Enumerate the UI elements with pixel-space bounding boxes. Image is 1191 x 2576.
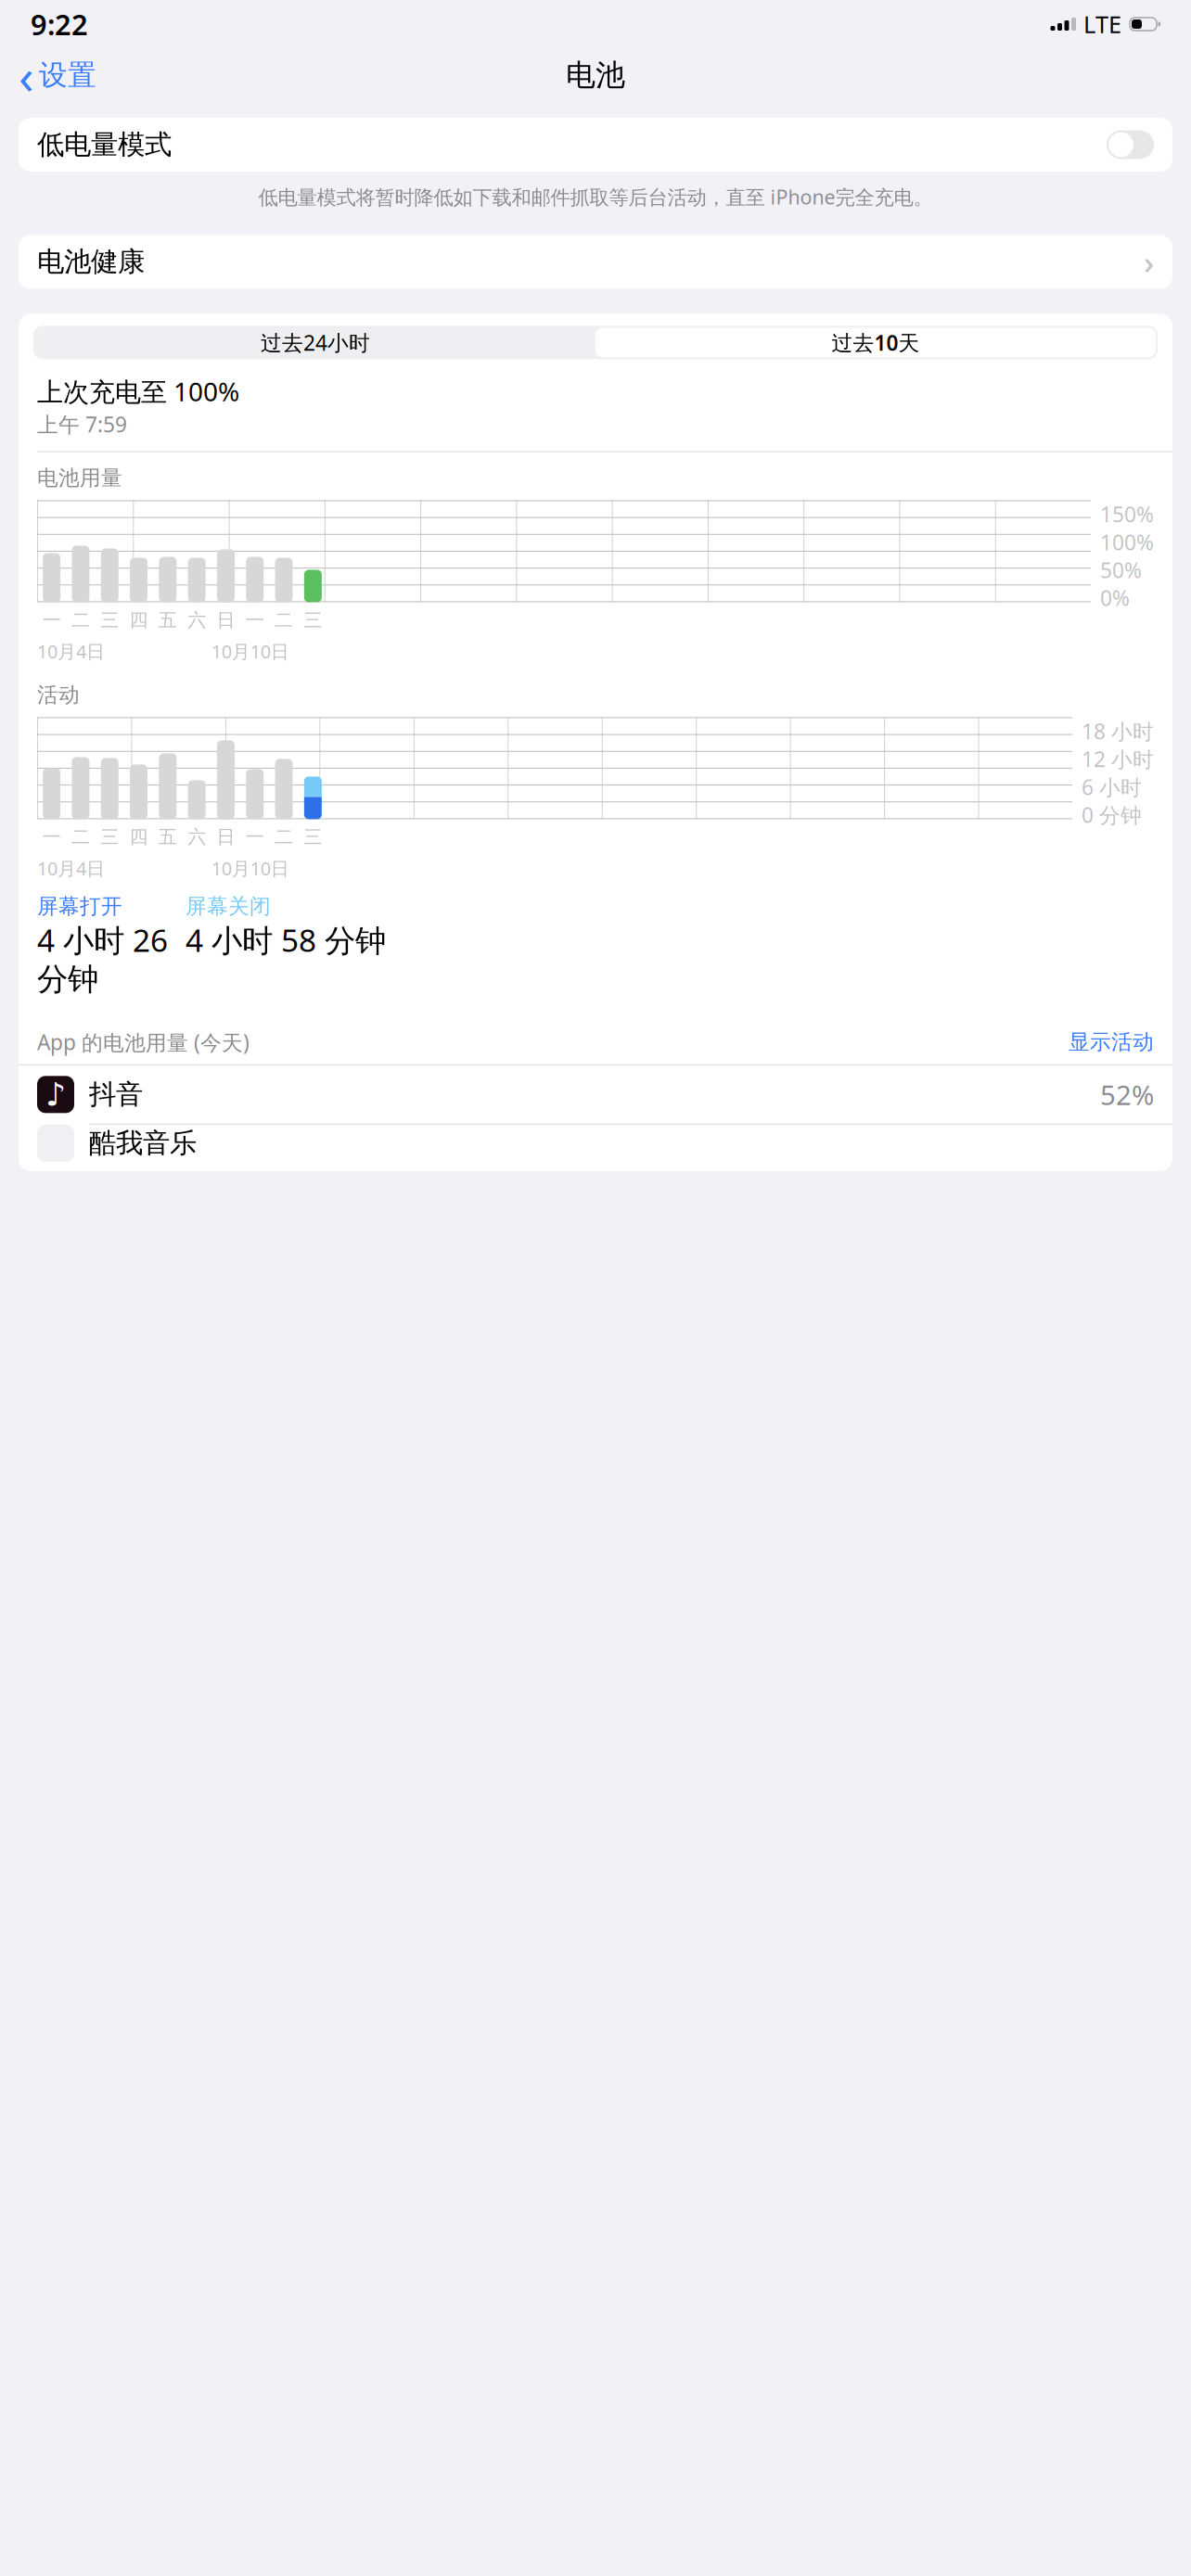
staticText: 活动 xyxy=(37,682,80,708)
staticText: 18 小时 xyxy=(1082,717,1154,745)
staticText: App 的电池用量 (今天) xyxy=(37,1028,250,1056)
staticText: 电池健康 xyxy=(37,245,145,278)
staticText: 10月4日 xyxy=(37,639,105,664)
staticText: 五 xyxy=(158,826,177,848)
staticText: 一 xyxy=(246,609,264,632)
staticText: 一 xyxy=(246,826,264,848)
staticText: 4 小时 26 分钟 xyxy=(37,919,168,998)
staticText: 100% xyxy=(1100,528,1154,556)
staticText: 过去10天 xyxy=(832,329,920,356)
staticText: 三 xyxy=(304,609,322,632)
staticText: 二 xyxy=(275,826,293,848)
staticText: 4 小时 58 分钟 xyxy=(186,919,386,960)
staticText: 52% xyxy=(1100,1076,1154,1113)
staticText: 四 xyxy=(129,609,148,632)
staticText: 抖音 xyxy=(89,1078,143,1111)
staticText: 一 xyxy=(42,826,61,848)
staticText: 二 xyxy=(71,609,90,632)
button[interactable]: ‹ xyxy=(19,37,96,113)
staticText: 上午 7:59 xyxy=(37,410,127,438)
button[interactable]: 过去10天 xyxy=(595,328,1156,357)
staticText: 三 xyxy=(304,826,322,848)
staticText: 0% xyxy=(1100,584,1130,612)
staticText: 150% xyxy=(1100,500,1154,528)
staticText: ♪ xyxy=(45,1076,66,1113)
staticText: 二 xyxy=(71,826,90,848)
staticText: LTE xyxy=(1083,9,1121,40)
staticText: ‹ xyxy=(19,42,34,108)
staticText: 显示活动 xyxy=(1069,1029,1154,1055)
staticText: 日 xyxy=(216,609,235,632)
button[interactable]: 酷我音乐 xyxy=(19,1125,1172,1171)
staticText: 五 xyxy=(158,609,177,632)
staticText: 过去24小时 xyxy=(261,329,370,356)
staticText: 电池用量 xyxy=(37,465,122,491)
staticText: 四 xyxy=(129,826,148,848)
staticText: › xyxy=(1144,240,1154,283)
staticText: 三 xyxy=(100,826,119,848)
staticText: 屏幕关闭 xyxy=(186,893,271,919)
staticText: 一 xyxy=(42,609,61,632)
button[interactable]: 电池健康 xyxy=(19,235,1172,289)
staticText: 0 分钟 xyxy=(1082,801,1142,829)
staticText: 50% xyxy=(1100,556,1142,584)
staticText: 六 xyxy=(187,826,206,848)
staticText: 低电量模式 xyxy=(37,128,172,161)
staticText: 10月4日 xyxy=(37,856,105,881)
staticText: 10月10日 xyxy=(211,856,289,881)
staticText: 屏幕打开 xyxy=(37,893,122,919)
staticText: 10月10日 xyxy=(211,639,289,664)
staticText: 12 小时 xyxy=(1082,745,1154,773)
staticText: 低电量模式将暂时降低如下载和邮件抓取等后台活动，直至 iPhone完全充电。 xyxy=(258,184,933,210)
staticText: 电池 xyxy=(566,57,625,93)
staticText: 二 xyxy=(275,609,293,632)
staticText: 上次充电至 100% xyxy=(37,374,239,408)
staticText: 三 xyxy=(100,609,119,632)
button[interactable]: 显示活动 xyxy=(1069,1029,1154,1055)
button[interactable]: 低电量模式 xyxy=(19,118,1172,172)
staticText: 6 小时 xyxy=(1082,773,1142,801)
button[interactable]: 过去24小时 xyxy=(35,328,595,357)
staticText: 设置 xyxy=(39,58,96,93)
staticText: 9:22 xyxy=(31,5,88,43)
button[interactable]: ♪ xyxy=(19,1065,1172,1124)
staticText: 日 xyxy=(216,826,235,848)
staticText: 六 xyxy=(187,609,206,632)
staticText: 酷我音乐 xyxy=(89,1126,197,1160)
